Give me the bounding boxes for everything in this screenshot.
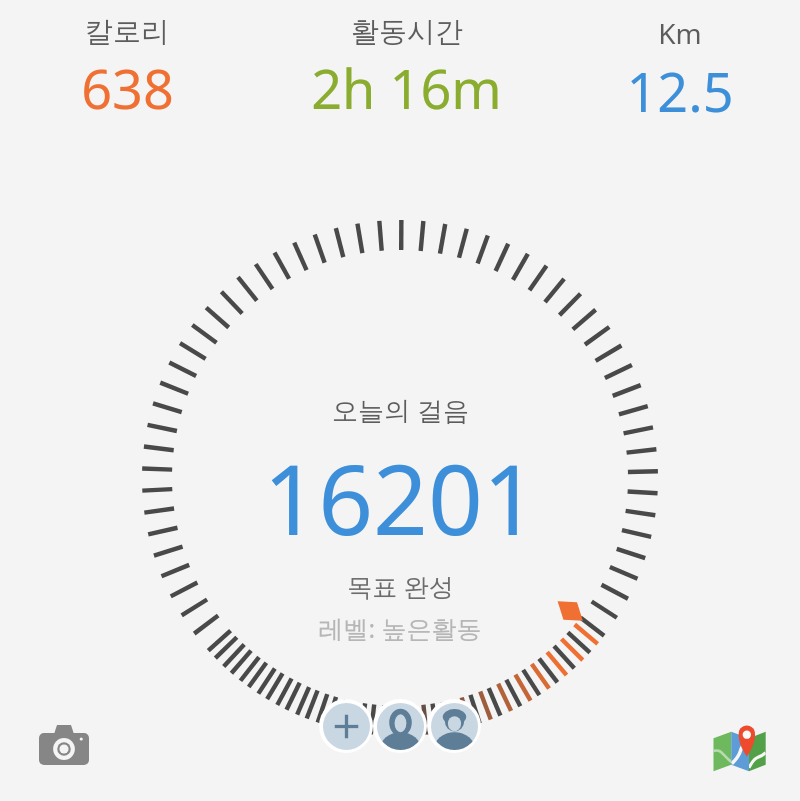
staticText: 오늘의 걸음 (332, 392, 469, 428)
button[interactable]: 칼로리 (0, 8, 254, 125)
staticText: 2h 16m (311, 51, 502, 125)
staticText: 활동시간 (351, 14, 463, 49)
button[interactable]: Camera (34, 715, 94, 775)
button[interactable]: Km (559, 8, 800, 128)
button[interactable]: Map (706, 715, 772, 781)
staticText: Km (658, 14, 702, 52)
staticText: 638 (81, 51, 174, 125)
staticText: 16201 (263, 432, 538, 563)
button[interactable]: Friend one (373, 699, 427, 753)
button[interactable]: Add friend (319, 699, 373, 753)
staticText: 목표 완성 (347, 569, 454, 603)
staticText: 12.5 (626, 54, 734, 128)
staticText: 레벨: 높은활동 (318, 611, 482, 645)
button[interactable]: 활동시간 (254, 8, 559, 125)
button[interactable]: Friend two (427, 699, 481, 753)
staticText: 칼로리 (85, 14, 169, 49)
